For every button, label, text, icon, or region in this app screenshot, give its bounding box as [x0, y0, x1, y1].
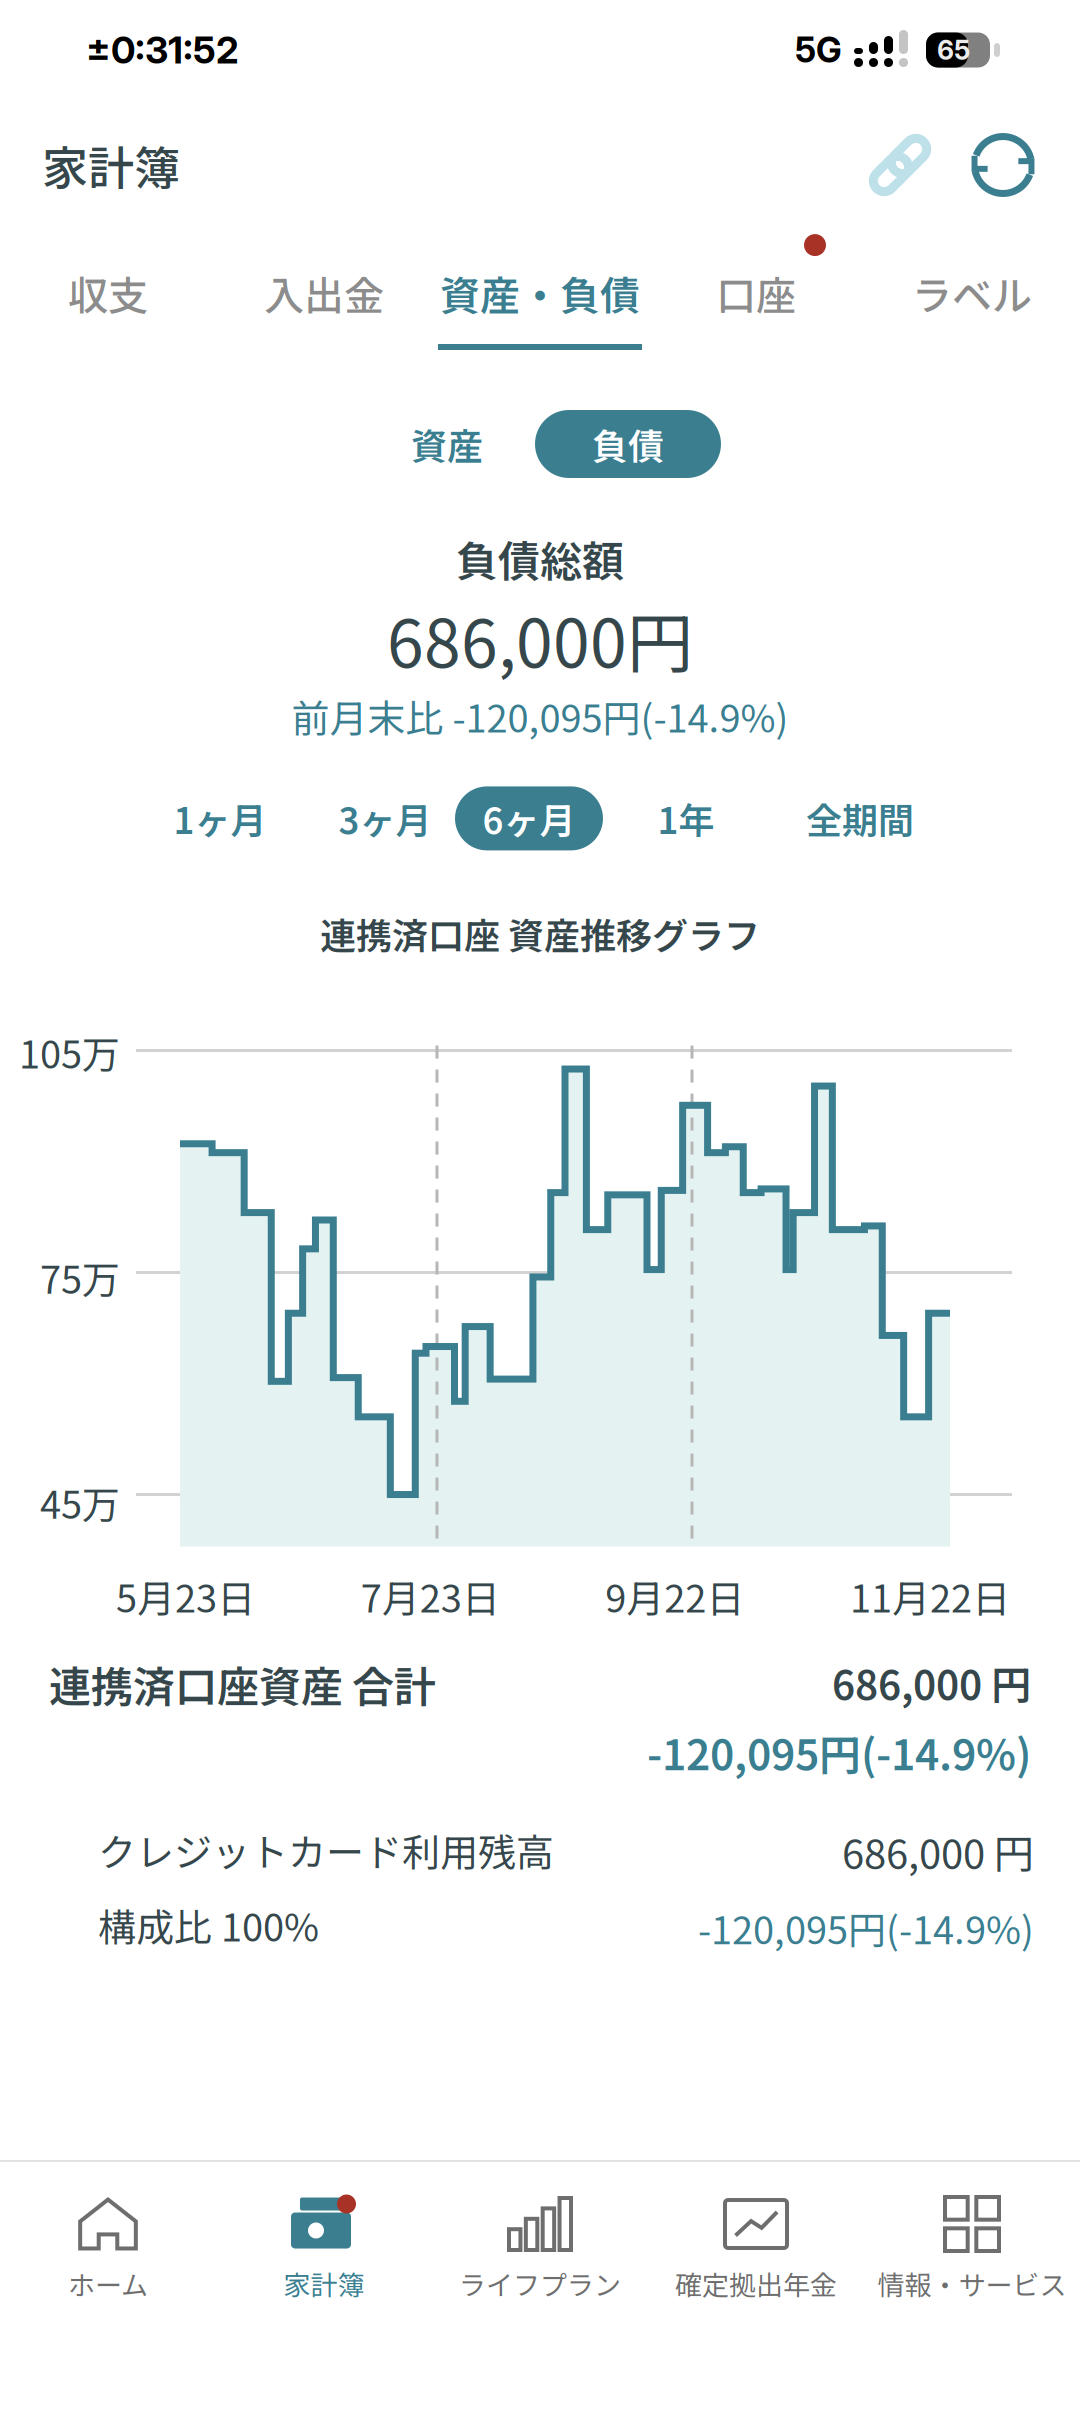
staticText: 11月22日	[850, 1568, 1010, 1623]
staticText: 負債総額	[456, 528, 624, 589]
button[interactable]: 更新	[954, 116, 1052, 214]
staticText: 口座	[716, 264, 796, 322]
staticText: 収支	[68, 264, 148, 322]
staticText: 負債	[592, 418, 664, 470]
button[interactable]: 資産	[357, 410, 483, 478]
button[interactable]: 確定拠出年金	[648, 2196, 864, 2303]
staticText: 資産・負債	[440, 264, 640, 322]
button[interactable]: リンク	[846, 111, 954, 219]
button[interactable]: 全期間	[787, 786, 933, 850]
staticText: 3ヶ月	[338, 792, 431, 844]
staticText: 5月23日	[116, 1568, 255, 1623]
button[interactable]: ライフプラン	[432, 2196, 648, 2303]
staticText: 1年	[657, 792, 714, 844]
staticText: 5G	[795, 29, 842, 71]
staticText: ±0:31:52	[86, 27, 239, 73]
staticText: 連携済口座資産 合計	[49, 1654, 436, 1714]
staticText: 686,000 円	[832, 1654, 1031, 1711]
staticText: 9月22日	[605, 1568, 744, 1623]
staticText: 家計簿	[283, 2264, 364, 2303]
staticText: -120,095円(-14.9%)	[698, 1900, 1034, 1955]
button[interactable]: 情報・サービス	[864, 2196, 1080, 2303]
button[interactable]: 3ヶ月	[315, 786, 455, 850]
staticText: 1ヶ月	[173, 792, 266, 844]
staticText: 6ヶ月	[482, 792, 575, 844]
staticText: -120,095円(-14.9%)	[647, 1721, 1031, 1782]
button[interactable]: 家計簿	[216, 2196, 432, 2303]
staticText: 資産	[411, 418, 483, 470]
staticText: 入出金	[264, 264, 384, 322]
staticText: ライフプラン	[459, 2264, 621, 2303]
button[interactable]: 入出金	[216, 230, 432, 350]
button[interactable]: 資産・負債	[432, 230, 648, 350]
staticText: 確定拠出年金	[675, 2264, 837, 2303]
button[interactable]: 6ヶ月	[455, 786, 603, 850]
staticText: 686,000 円	[842, 1822, 1034, 1880]
button[interactable]: 1ヶ月	[147, 786, 293, 850]
staticText: クレジットカード利用残高	[98, 1822, 554, 1877]
staticText: 45万	[40, 1475, 120, 1530]
staticText: 686,000円	[387, 591, 693, 686]
button[interactable]: 口座	[648, 230, 864, 350]
staticText: ラベル	[912, 264, 1032, 322]
button[interactable]: ホーム	[0, 2196, 216, 2303]
staticText: 全期間	[806, 792, 914, 844]
staticText: 情報・サービス	[877, 2264, 1066, 2303]
staticText: 75万	[40, 1250, 120, 1305]
staticText: 105万	[19, 1024, 120, 1079]
staticText: 連携済口座 資産推移グラフ	[320, 907, 760, 959]
staticText: 家計簿	[42, 132, 180, 198]
button[interactable]: 1年	[631, 786, 741, 850]
button[interactable]: 収支	[0, 230, 216, 350]
staticText: 構成比 100%	[98, 1897, 319, 1952]
button[interactable]: 負債	[535, 410, 721, 478]
button[interactable]: ラベル	[864, 230, 1080, 350]
staticText: ホーム	[68, 2264, 148, 2303]
staticText: 65	[937, 34, 970, 66]
staticText: 7月23日	[361, 1568, 500, 1623]
staticText: 前月末比 -120,095円(-14.9%)	[291, 688, 788, 743]
